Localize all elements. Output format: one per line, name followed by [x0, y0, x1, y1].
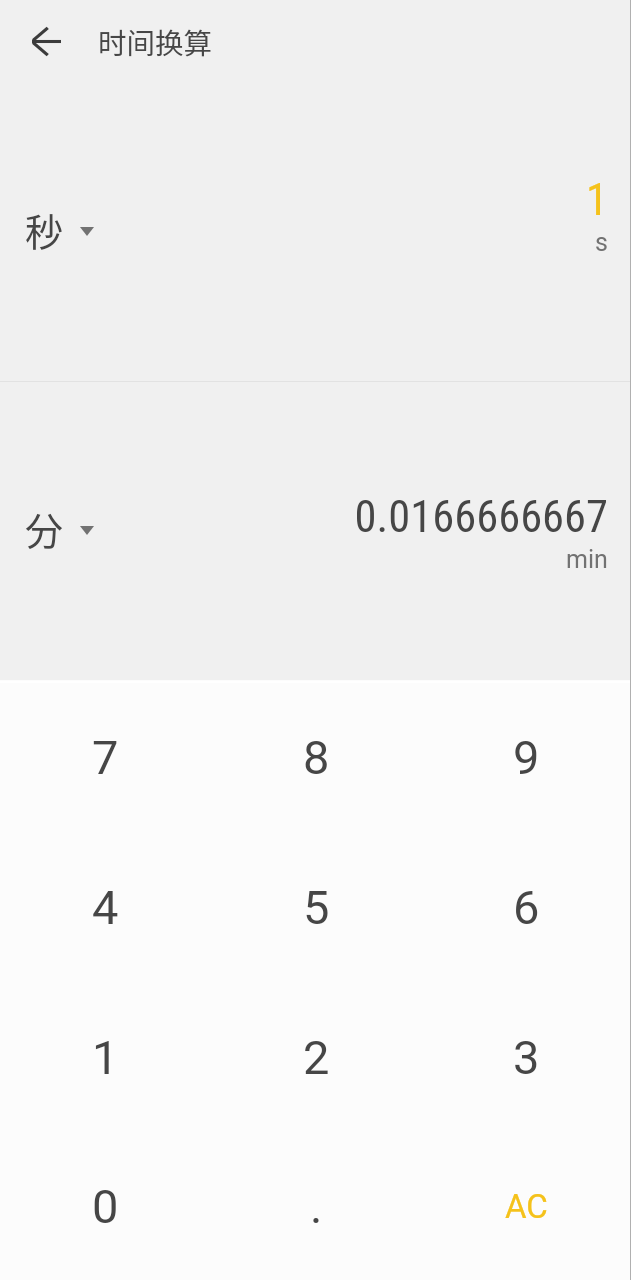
staticText: 分 — [25, 501, 64, 556]
staticText: 3 — [513, 1030, 540, 1085]
button[interactable]: 1 — [0, 982, 211, 1132]
button[interactable]: Back — [18, 13, 74, 69]
button[interactable]: 8 — [211, 682, 421, 832]
staticText: 8 — [303, 730, 330, 785]
button[interactable]: 5 — [211, 832, 421, 982]
button[interactable]: 0 — [0, 1132, 211, 1280]
staticText: 1 — [92, 1030, 119, 1085]
staticText: 7 — [92, 730, 119, 785]
button[interactable]: 分 — [18, 495, 104, 561]
button[interactable]: 4 — [0, 832, 211, 982]
staticText: 0 — [92, 1179, 119, 1234]
button[interactable]: 0.0166666667 — [140, 491, 608, 574]
staticText: 时间换算 — [98, 21, 213, 62]
staticText: 4 — [92, 880, 119, 935]
staticText: 6 — [513, 880, 540, 935]
button[interactable]: 3 — [421, 982, 631, 1132]
button[interactable]: 秒 — [18, 196, 104, 262]
button[interactable]: AC — [421, 1132, 631, 1280]
staticText: 2 — [303, 1030, 330, 1085]
button[interactable]: 2 — [211, 982, 421, 1132]
staticText: AC — [505, 1187, 548, 1226]
staticText: 1 — [586, 174, 608, 226]
staticText: 5 — [303, 880, 330, 935]
staticText: . — [310, 1179, 323, 1234]
staticText: 9 — [513, 730, 540, 785]
staticText: min — [566, 545, 608, 574]
button[interactable]: 1 — [140, 174, 608, 257]
staticText: s — [595, 228, 608, 257]
button[interactable]: 9 — [421, 682, 631, 832]
button[interactable]: 7 — [0, 682, 211, 832]
button[interactable]: 6 — [421, 832, 631, 982]
staticText: 秒 — [25, 202, 64, 257]
staticText: 0.0166666667 — [354, 491, 608, 543]
button[interactable]: . — [211, 1132, 421, 1280]
